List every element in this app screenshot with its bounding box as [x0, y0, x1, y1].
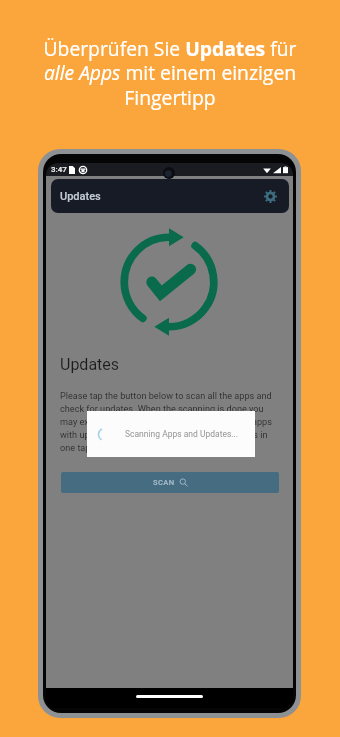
staticText: Überprüfen Sie Updates für alle Apps mit…	[8, 35, 332, 111]
staticText: Scanning Apps and Updates...	[125, 429, 239, 439]
staticText: Updates	[60, 355, 120, 374]
button[interactable]: Settings	[264, 190, 277, 203]
staticText: Updates	[60, 190, 101, 203]
staticText: SCAN	[153, 478, 175, 487]
staticText: 3:47	[51, 165, 67, 174]
button[interactable]: SCAN	[61, 472, 279, 493]
button[interactable]: Updates	[51, 179, 289, 213]
button[interactable]: Home	[136, 695, 203, 698]
staticText: Please tap the button below to scan all …	[60, 391, 274, 454]
button[interactable]: Scanning Apps and Updates...	[87, 411, 255, 457]
